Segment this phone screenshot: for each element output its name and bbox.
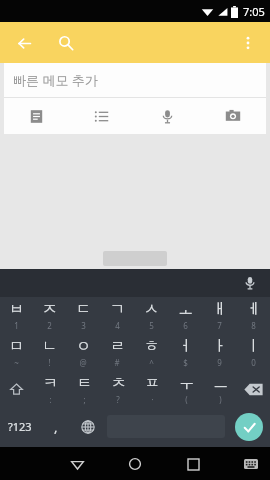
staticText: 9 [217,357,222,368]
button[interactable]: Note [4,98,69,134]
staticText: 7:05 [243,4,265,19]
staticText: 3 [81,320,86,331]
staticText: ㅜ [179,374,194,393]
button[interactable]: Back [8,27,40,59]
button[interactable]: Recent apps [178,449,208,479]
staticText: 0 [251,357,256,368]
staticText: ㅋ [43,374,58,393]
button[interactable]: Photo note [200,98,266,134]
staticText: ㅍ [145,374,160,393]
button[interactable]: Voice note [134,98,200,134]
staticText: ㅊ [111,374,126,393]
staticText: ㅔ [246,300,261,319]
button[interactable]: ㅅ [134,297,168,334]
staticText: @ [79,357,87,368]
button[interactable]: Backspace [237,371,270,408]
button[interactable]: ㅋ [33,371,67,408]
staticText: , [54,418,58,436]
staticText: ; [83,394,86,405]
button[interactable]: ㅇ [66,334,100,371]
staticText: $ [183,357,188,368]
button[interactable]: Comma [40,408,72,445]
staticText: 7 [217,320,222,331]
button[interactable]: Switch keyboard [238,451,264,477]
button[interactable]: ㅜ [169,371,203,408]
staticText: ㄷ [76,300,91,319]
staticText: ㅌ [77,374,92,393]
button[interactable]: More options [232,27,264,59]
button[interactable]: Home [120,449,150,479]
staticText: ㅐ [212,300,227,319]
staticText: ) [219,394,222,405]
staticText: ㅇ [76,337,91,356]
button[interactable]: ㅁ [0,334,33,371]
staticText: ㅏ [212,337,227,356]
button[interactable]: ㅂ [0,297,33,334]
button[interactable]: ㅎ [134,334,168,371]
staticText: : [49,394,52,405]
button[interactable]: ㄱ [100,297,134,334]
button[interactable]: ㅣ [236,334,270,371]
staticText: ~ [14,357,19,368]
staticText: # [114,357,120,368]
staticText: ( [185,394,188,405]
button[interactable]: ㅍ [135,371,169,408]
button[interactable]: ㅌ [67,371,101,408]
button[interactable]: ㄹ [100,334,134,371]
staticText: ㅡ [213,374,228,393]
staticText: 빠른 메모 추가 [13,71,98,89]
staticText: ㄹ [110,337,125,356]
staticText: ㅣ [246,337,261,356]
staticText: 5 [149,320,154,331]
button[interactable]: ㅈ [33,297,66,334]
button[interactable]: ㅊ [101,371,135,408]
staticText: ㅅ [144,300,159,319]
button[interactable]: ㄷ [66,297,100,334]
staticText: ㄴ [42,337,57,356]
button[interactable]: ㅐ [202,297,236,334]
staticText: ? [116,394,120,405]
staticText: ㅎ [144,337,159,356]
button[interactable]: ㅡ [203,371,237,408]
staticText: 1 [14,320,19,331]
button[interactable]: ㅔ [236,297,270,334]
staticText: ^ [149,357,154,368]
button[interactable]: ㄴ [33,334,66,371]
staticText: · [151,394,154,405]
staticText: ㅗ [178,300,193,319]
staticText: ㄱ [110,300,125,319]
button[interactable]: Search [50,27,82,59]
staticText: ㅓ [178,337,193,356]
staticText: ㅈ [42,300,57,319]
button[interactable]: Checklist [69,98,134,134]
button[interactable]: ㅏ [202,334,236,371]
button[interactable]: ?123 [0,408,40,445]
button[interactable]: Shift [0,371,33,408]
staticText: 4 [115,320,120,331]
button[interactable]: Change keyboard language [72,408,104,445]
staticText: 8 [251,320,256,331]
staticText: ㅁ [9,337,24,356]
staticText: ?123 [8,419,32,434]
staticText: ㅂ [9,300,24,319]
staticText: 6 [183,320,188,331]
button[interactable]: Enter [228,408,270,445]
button[interactable]: Back [62,449,92,479]
button[interactable]: 빠른 메모 추가 [4,63,266,134]
button[interactable]: Voice input [238,271,262,295]
button[interactable]: ㅓ [168,334,202,371]
staticText: 2 [47,320,52,331]
staticText: ! [48,357,51,368]
button[interactable]: ㅗ [168,297,202,334]
